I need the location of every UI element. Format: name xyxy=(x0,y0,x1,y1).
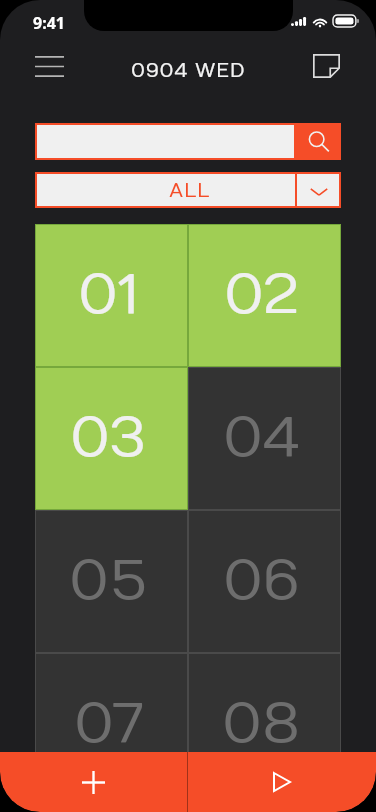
staticText: 06 xyxy=(223,547,300,614)
staticText: 08 xyxy=(222,690,301,757)
staticText: 0904 WED xyxy=(131,59,246,82)
staticText: 03 xyxy=(70,404,147,471)
staticText: 04 xyxy=(223,404,300,471)
button[interactable]: Note xyxy=(304,44,348,88)
button[interactable] xyxy=(35,172,296,208)
staticText: 07 xyxy=(74,690,144,757)
button[interactable]: 04 xyxy=(188,367,341,510)
staticText: ALL xyxy=(169,179,210,202)
button[interactable]: Menu xyxy=(28,44,71,88)
button[interactable]: Search xyxy=(296,123,341,160)
button[interactable]: 01 xyxy=(35,224,188,367)
button[interactable]: Play xyxy=(188,752,376,812)
staticText: 05 xyxy=(69,547,148,614)
button[interactable]: 07 xyxy=(35,653,188,796)
button[interactable]: 03 xyxy=(35,367,188,510)
button[interactable]: 06 xyxy=(188,510,341,653)
button[interactable]: 05 xyxy=(35,510,188,653)
button[interactable]: Search field xyxy=(35,123,296,160)
button[interactable]: 08 xyxy=(188,653,341,796)
staticText: 02 xyxy=(224,261,299,328)
button[interactable]: 02 xyxy=(188,224,341,367)
staticText: 9:41 xyxy=(33,12,65,34)
button[interactable]: Add xyxy=(0,752,187,812)
button[interactable]: Expand filter xyxy=(295,172,341,208)
staticText: 01 xyxy=(78,261,140,328)
